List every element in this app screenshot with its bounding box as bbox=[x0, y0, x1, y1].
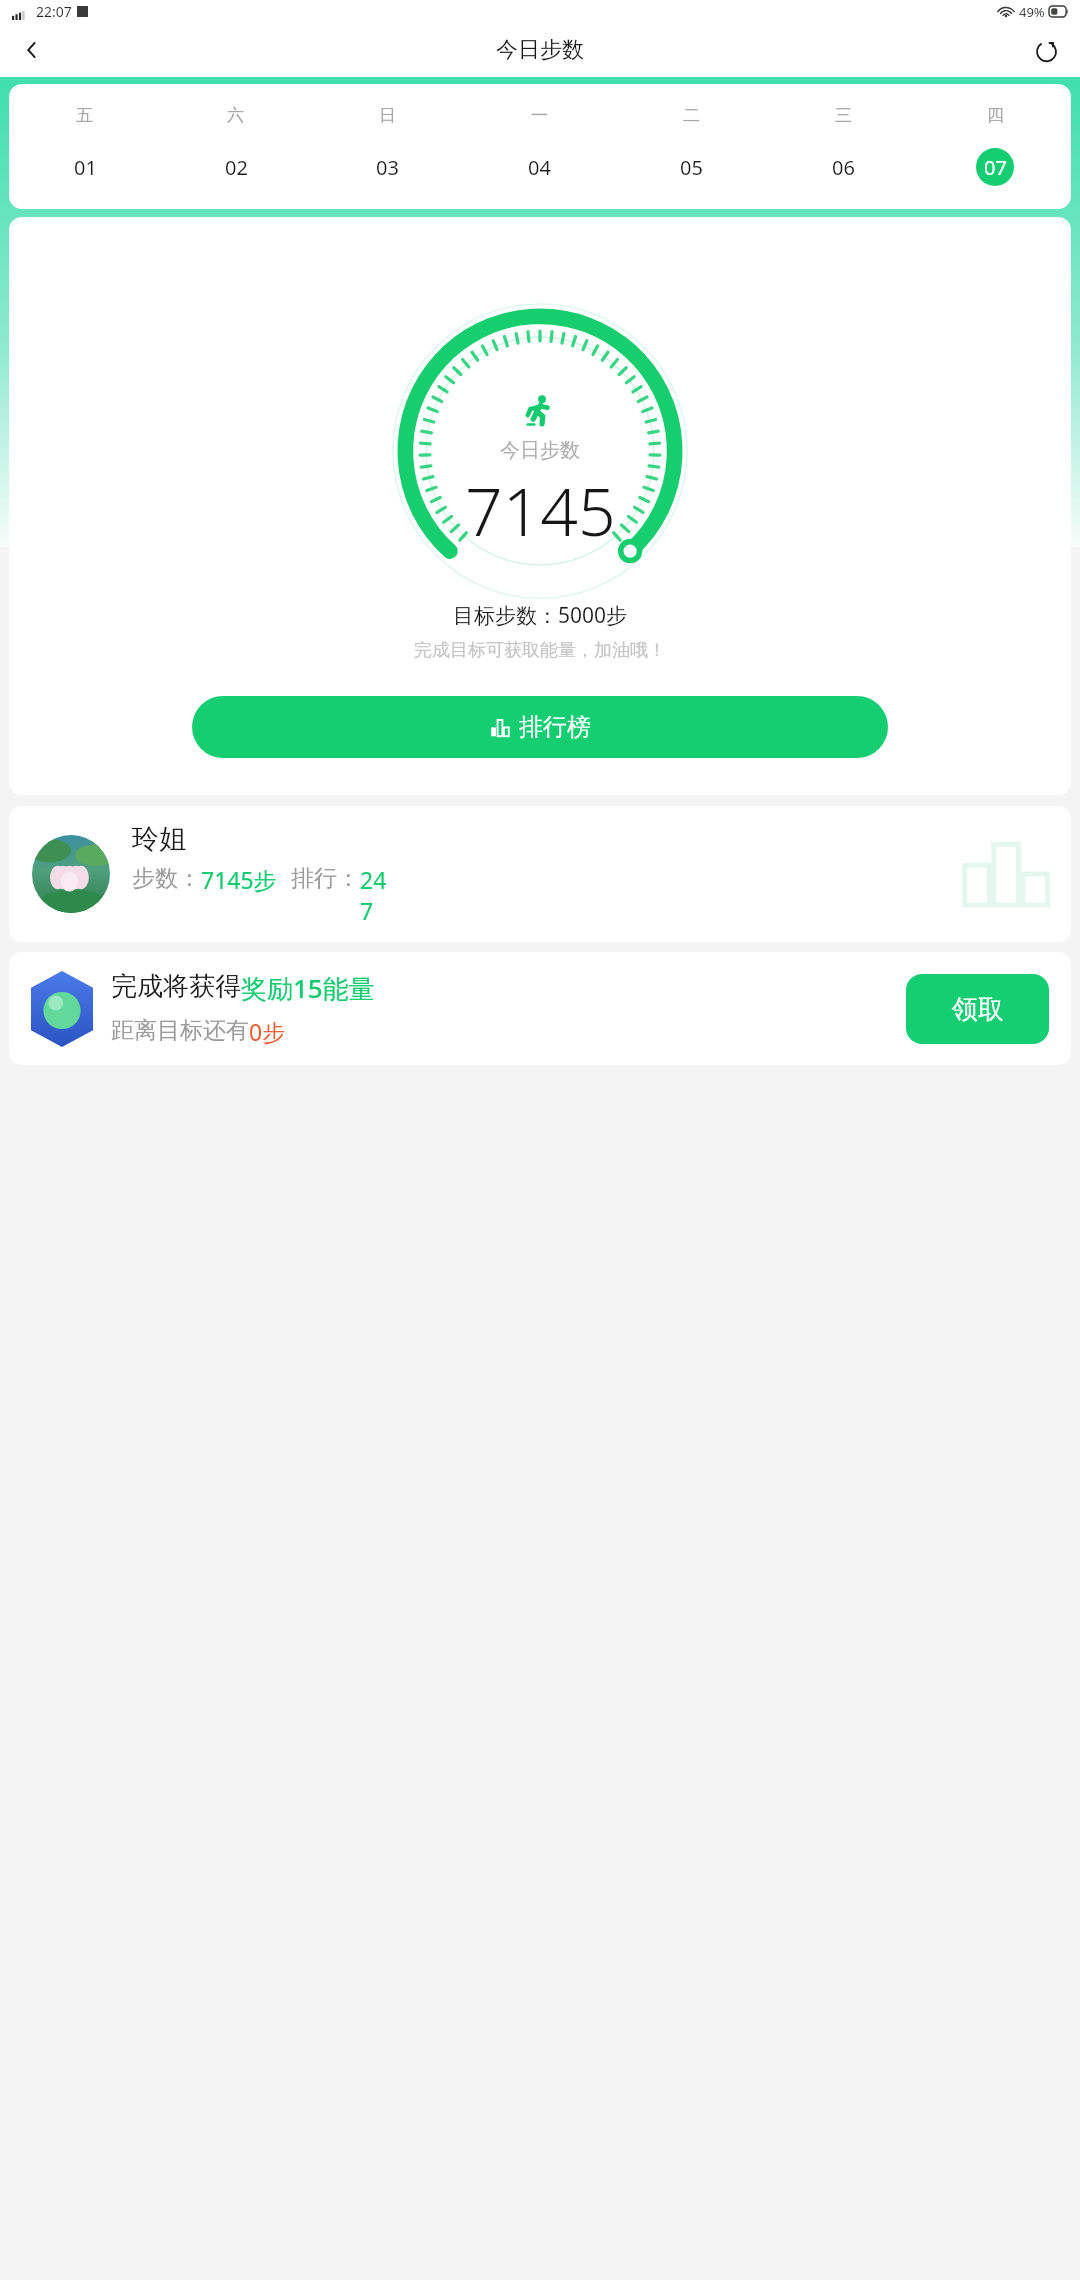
staticText: 六 bbox=[227, 105, 244, 126]
staticText: 一 bbox=[531, 105, 548, 126]
staticText: 今日步数 bbox=[500, 438, 580, 463]
button[interactable]: 04 bbox=[520, 148, 558, 186]
button[interactable]: 06 bbox=[824, 148, 862, 186]
staticText: 领取 bbox=[952, 993, 1004, 1026]
button[interactable]: 排行榜 bbox=[192, 696, 888, 758]
button[interactable]: 01 bbox=[66, 148, 104, 186]
staticText: 完成将获得 bbox=[111, 970, 241, 1003]
staticText: 03 bbox=[376, 154, 399, 181]
staticText: 四 bbox=[987, 105, 1004, 126]
staticText: 距离目标还有 bbox=[111, 1016, 249, 1045]
staticText: 02 bbox=[225, 154, 248, 181]
staticText: 22:07 bbox=[36, 2, 72, 21]
staticText: 五 bbox=[76, 105, 93, 126]
staticText: 完成目标可获取能量，加油哦！ bbox=[414, 639, 666, 662]
staticText: 三 bbox=[835, 105, 852, 126]
staticText: 日 bbox=[379, 105, 396, 126]
staticText: 01 bbox=[74, 154, 97, 181]
staticText: 247 bbox=[360, 864, 390, 926]
button[interactable]: Share bbox=[1022, 26, 1070, 74]
staticText: 06 bbox=[832, 154, 855, 181]
button[interactable]: 玲姐 bbox=[9, 806, 1071, 942]
staticText: 49% bbox=[1019, 3, 1045, 21]
staticText: 玲姐 bbox=[132, 822, 186, 856]
staticText: 05 bbox=[680, 154, 703, 181]
button[interactable]: 03 bbox=[368, 148, 406, 186]
button[interactable]: 五 bbox=[9, 84, 1071, 209]
staticText: 排行： bbox=[291, 864, 360, 893]
staticText: 今日步数 bbox=[496, 36, 584, 64]
staticText: 排行榜 bbox=[519, 712, 591, 742]
staticText: 07 bbox=[984, 154, 1007, 181]
button[interactable]: 领取 bbox=[906, 974, 1049, 1044]
staticText: 0步 bbox=[249, 1016, 286, 1047]
staticText: 二 bbox=[683, 105, 700, 126]
staticText: 04 bbox=[528, 154, 551, 181]
button[interactable]: 02 bbox=[217, 148, 255, 186]
button[interactable]: 07 bbox=[976, 148, 1014, 186]
staticText: 7145步 bbox=[201, 864, 277, 895]
staticText: 步数： bbox=[132, 864, 201, 893]
staticText: 奖励15能量 bbox=[241, 970, 375, 1006]
button[interactable]: 05 bbox=[672, 148, 710, 186]
staticText: 目标步数：5000步 bbox=[453, 601, 628, 630]
staticText: 7145 bbox=[465, 465, 616, 555]
button[interactable]: Back bbox=[8, 26, 56, 74]
